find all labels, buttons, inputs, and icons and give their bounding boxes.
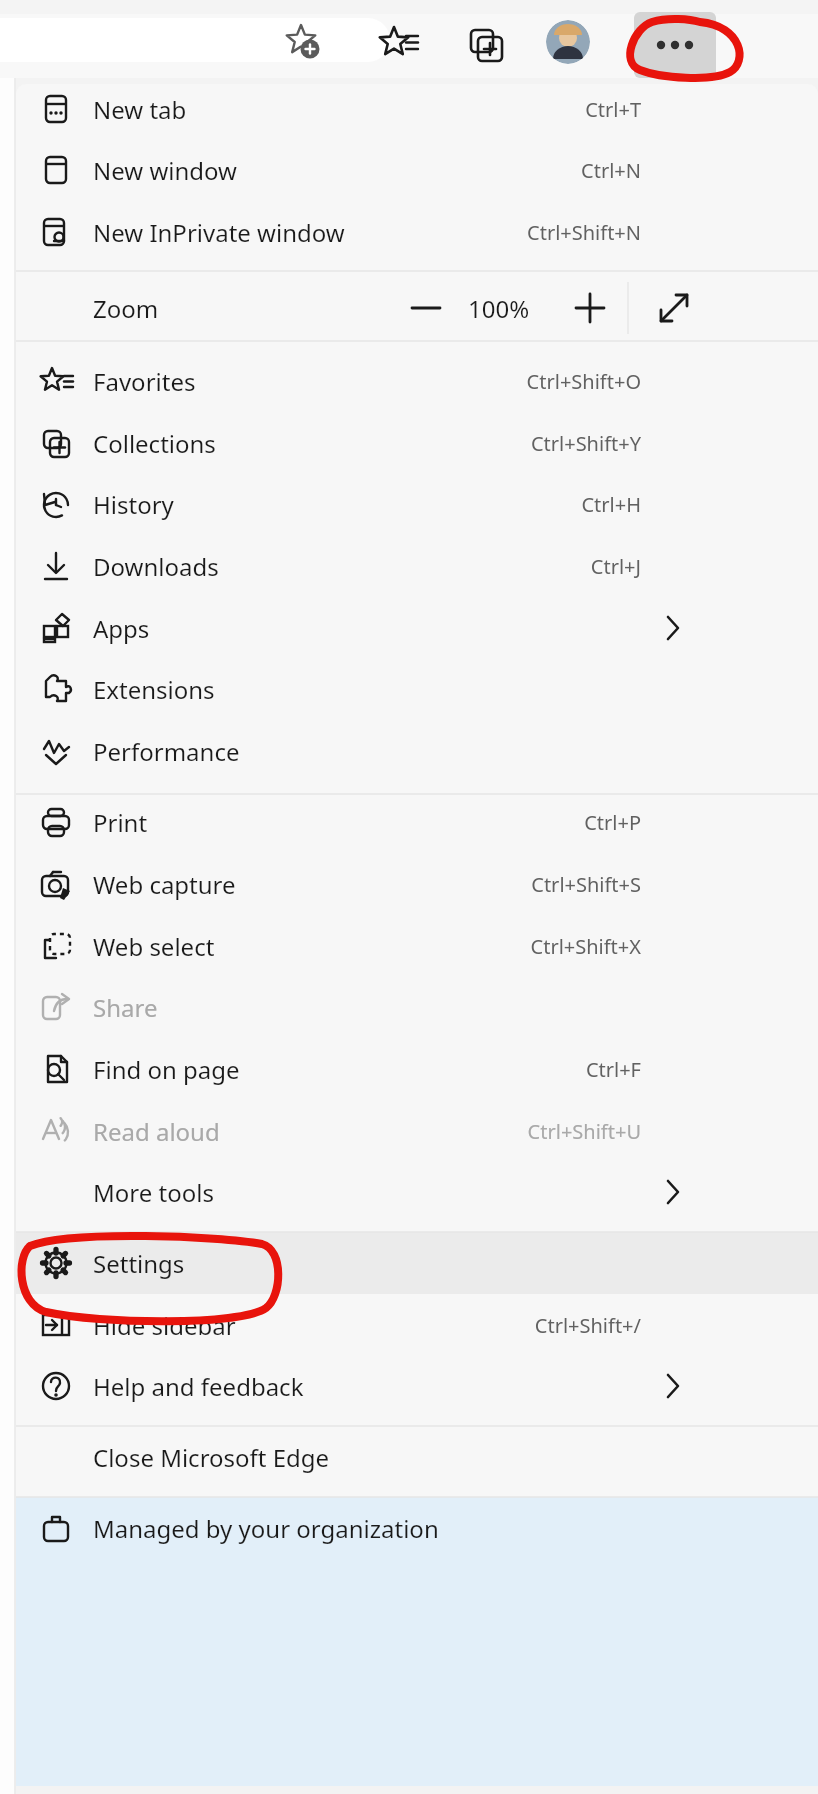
staticText: Ctrl+Shift+/ bbox=[441, 1312, 641, 1339]
button[interactable]: Settings and more bbox=[634, 12, 716, 78]
staticText: Ctrl+Shift+O bbox=[441, 368, 641, 395]
staticText: Close Microsoft Edge bbox=[93, 1441, 330, 1474]
staticText: Print bbox=[93, 806, 148, 839]
button[interactable]: History bbox=[16, 473, 818, 535]
staticText: Help and feedback bbox=[93, 1370, 304, 1403]
button[interactable]: Help and feedback bbox=[16, 1355, 818, 1417]
staticText: Ctrl+P bbox=[441, 809, 641, 836]
button[interactable]: Read aloud bbox=[16, 1100, 818, 1162]
button[interactable]: Apps bbox=[16, 597, 818, 659]
staticText: Web select bbox=[93, 930, 215, 963]
staticText: Settings bbox=[93, 1247, 185, 1280]
button[interactable]: Find on page bbox=[16, 1038, 818, 1100]
staticText: Downloads bbox=[93, 550, 219, 583]
staticText: Ctrl+Shift+X bbox=[441, 933, 641, 960]
staticText: Ctrl+Shift+S bbox=[441, 871, 641, 898]
button[interactable]: Collections bbox=[459, 18, 507, 66]
staticText: Apps bbox=[93, 612, 150, 645]
button[interactable]: Print bbox=[16, 791, 818, 853]
button[interactable]: Zoom out bbox=[398, 280, 454, 336]
button[interactable]: Performance bbox=[16, 720, 818, 782]
staticText: Read aloud bbox=[93, 1115, 220, 1148]
button[interactable]: Favorites bbox=[374, 18, 422, 66]
button[interactable]: More tools bbox=[16, 1161, 818, 1223]
staticText: Share bbox=[93, 991, 158, 1024]
staticText: New window bbox=[93, 154, 237, 187]
button[interactable]: Settings bbox=[16, 1232, 818, 1294]
staticText: Ctrl+N bbox=[441, 157, 641, 184]
button[interactable]: Downloads bbox=[16, 535, 818, 597]
button[interactable]: Collections bbox=[16, 412, 818, 474]
staticText: Collections bbox=[93, 427, 216, 460]
staticText: 100% bbox=[468, 292, 530, 325]
staticText: Ctrl+Shift+N bbox=[441, 219, 641, 246]
staticText: Ctrl+Shift+U bbox=[441, 1118, 641, 1145]
staticText: New tab bbox=[93, 93, 187, 126]
staticText: Performance bbox=[93, 735, 240, 768]
staticText: Favorites bbox=[93, 365, 196, 398]
button[interactable]: Profile bbox=[546, 20, 590, 64]
staticText: Ctrl+J bbox=[441, 553, 641, 580]
button[interactable]: Managed by your organization bbox=[16, 1497, 818, 1559]
button[interactable]: Full screen bbox=[646, 280, 702, 336]
staticText: Web capture bbox=[93, 868, 236, 901]
button[interactable]: Hide sidebar bbox=[16, 1294, 818, 1356]
button[interactable]: Close Microsoft Edge bbox=[16, 1426, 818, 1488]
button[interactable]: Web select bbox=[16, 915, 818, 977]
staticText: Ctrl+T bbox=[441, 96, 641, 123]
button[interactable]: New tab bbox=[16, 78, 818, 140]
button[interactable]: Zoom in bbox=[562, 280, 618, 336]
button[interactable]: New InPrivate window bbox=[16, 201, 818, 263]
button[interactable]: Favorites bbox=[16, 350, 818, 412]
button[interactable]: New window bbox=[16, 139, 818, 201]
staticText: Managed by your organization bbox=[93, 1512, 439, 1545]
button[interactable]: Share bbox=[16, 976, 818, 1038]
staticText: Zoom bbox=[93, 292, 159, 325]
staticText: Ctrl+Shift+Y bbox=[441, 430, 641, 457]
staticText: Extensions bbox=[93, 673, 215, 706]
staticText: More tools bbox=[93, 1176, 214, 1209]
staticText: Ctrl+F bbox=[441, 1056, 641, 1083]
staticText: Hide sidebar bbox=[93, 1309, 236, 1342]
button[interactable]: Add to favorites bbox=[279, 18, 323, 62]
staticText: Ctrl+H bbox=[441, 491, 641, 518]
button[interactable]: Web capture bbox=[16, 853, 818, 915]
staticText: Find on page bbox=[93, 1053, 240, 1086]
staticText: New InPrivate window bbox=[93, 216, 345, 249]
button[interactable]: Extensions bbox=[16, 658, 818, 720]
staticText: History bbox=[93, 488, 174, 521]
